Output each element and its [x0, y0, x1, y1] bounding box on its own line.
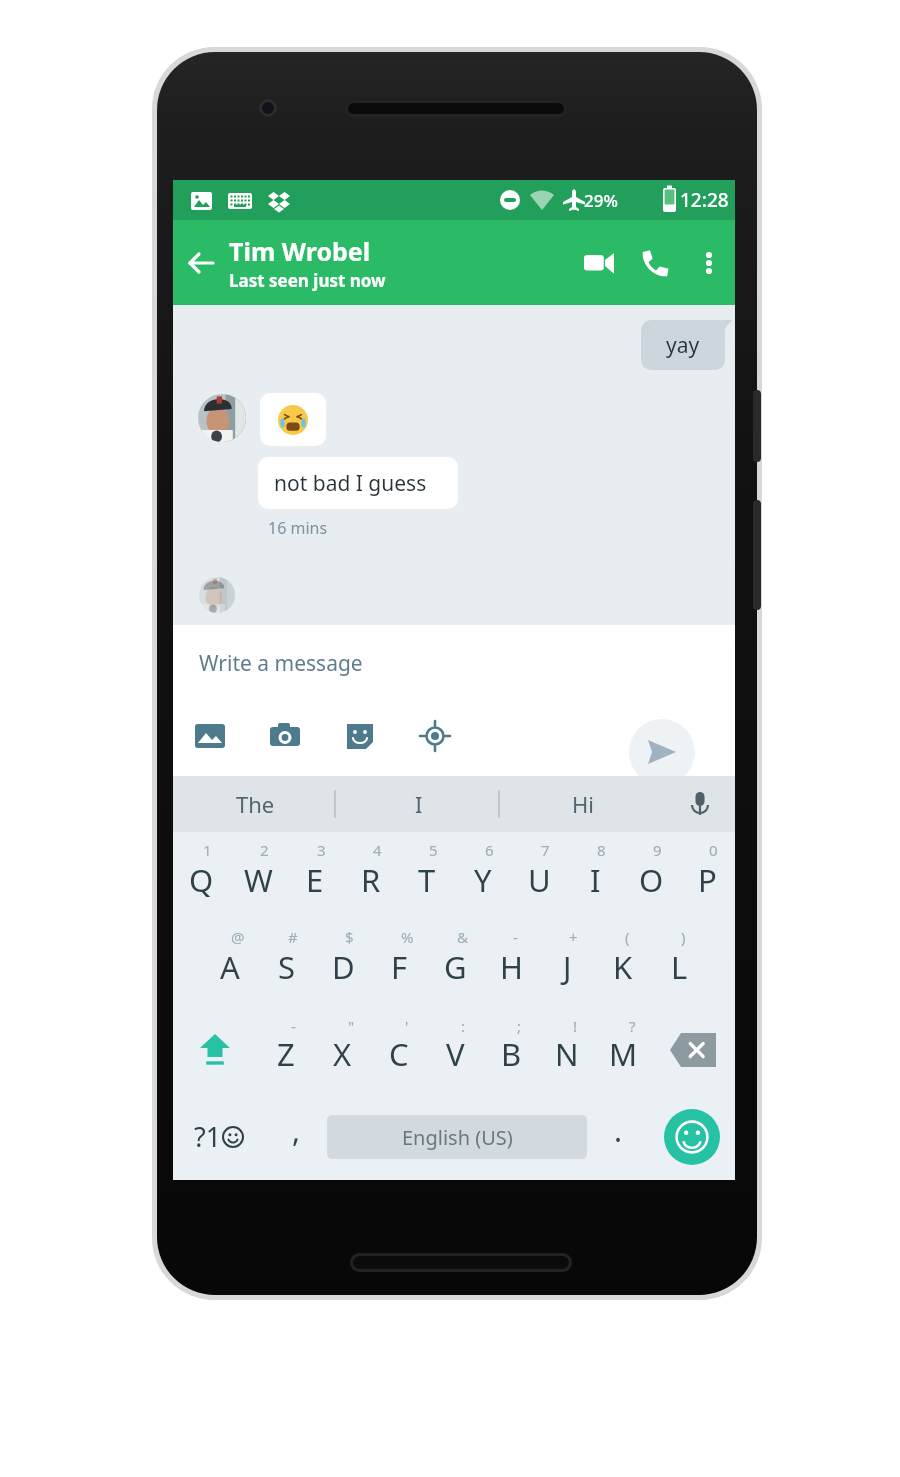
staticText: The — [236, 789, 275, 819]
button[interactable]: @ — [201, 919, 258, 1006]
button[interactable]: English (US) — [327, 1115, 587, 1159]
staticText: 3 — [317, 840, 326, 860]
button[interactable]: ' — [371, 1006, 427, 1093]
button[interactable]: - — [257, 1006, 314, 1093]
staticText: 4 — [373, 840, 382, 860]
staticText: " — [348, 1016, 355, 1036]
staticText: M — [609, 1033, 638, 1075]
button[interactable]: ) — [651, 919, 707, 1006]
staticText: X — [333, 1033, 352, 1075]
staticText: : — [461, 1016, 466, 1036]
staticText: Z — [277, 1033, 295, 1075]
staticText: E — [306, 859, 324, 901]
staticText: 1 — [203, 840, 212, 860]
staticText: T — [418, 859, 436, 901]
staticText: C — [389, 1033, 409, 1075]
button[interactable]: 0 — [679, 832, 735, 919]
button[interactable]: Backspace — [651, 1006, 735, 1093]
staticText: N — [555, 1033, 579, 1075]
staticText: G — [444, 946, 467, 988]
button[interactable]: ?1 — [173, 1093, 265, 1180]
staticText: L — [671, 946, 688, 988]
button[interactable]: Send — [629, 719, 695, 785]
button[interactable]: 1 — [173, 832, 230, 919]
staticText: 16 mins — [268, 517, 328, 539]
button[interactable]: Hi — [501, 776, 665, 832]
button[interactable]: 5 — [399, 832, 455, 919]
staticText: . — [614, 1110, 623, 1151]
button[interactable]: Call — [627, 235, 683, 291]
button[interactable]: ; — [483, 1006, 539, 1093]
staticText: ? — [629, 1016, 636, 1036]
staticText: 29% — [584, 189, 618, 212]
button[interactable]: More options — [683, 237, 735, 289]
button[interactable]: Camera — [260, 711, 310, 761]
staticText: # — [288, 927, 298, 947]
staticText: ; — [517, 1016, 522, 1036]
staticText: & — [457, 927, 468, 947]
staticText: English (US) — [402, 1124, 513, 1151]
button[interactable]: not bad I guess — [258, 457, 458, 509]
button[interactable]: ? — [595, 1006, 651, 1093]
button[interactable]: 8 — [567, 832, 623, 919]
staticText: 0 — [709, 840, 718, 860]
staticText: 12:28 — [680, 187, 729, 213]
button[interactable]: I — [337, 776, 501, 832]
staticText: S — [278, 946, 296, 988]
staticText: 2 — [260, 840, 269, 860]
button[interactable]: % — [371, 919, 427, 1006]
staticText: B — [501, 1033, 522, 1075]
button[interactable]: + — [539, 919, 595, 1006]
button[interactable]: Gallery — [185, 711, 235, 761]
button[interactable]: yay — [641, 320, 725, 370]
staticText: K — [613, 946, 633, 988]
button[interactable]: 3 — [287, 832, 343, 919]
button[interactable]: - — [483, 919, 539, 1006]
button[interactable]: : — [427, 1006, 483, 1093]
button[interactable]: " — [314, 1006, 371, 1093]
staticText: A — [220, 946, 240, 988]
button[interactable]: 4 — [343, 832, 399, 919]
staticText: 8 — [597, 840, 606, 860]
button[interactable] — [260, 393, 326, 446]
button[interactable]: Back — [173, 235, 229, 291]
staticText: Y — [474, 859, 492, 901]
staticText: - — [291, 1016, 296, 1036]
staticText: 7 — [541, 840, 550, 860]
button[interactable]: Shift — [173, 1006, 257, 1093]
button[interactable]: $ — [315, 919, 371, 1006]
staticText: V — [446, 1033, 465, 1075]
staticText: ' — [405, 1016, 409, 1036]
staticText: H — [500, 946, 523, 988]
button[interactable]: Video call — [571, 235, 627, 291]
staticText: I — [415, 789, 423, 819]
button[interactable]: 9 — [623, 832, 679, 919]
button[interactable]: ! — [539, 1006, 595, 1093]
button[interactable]: Tim Wrobel — [229, 234, 571, 292]
staticText: - — [513, 927, 518, 947]
staticText: D — [332, 946, 355, 988]
button[interactable]: Voice input — [665, 776, 735, 832]
button[interactable]: Emoji — [649, 1093, 735, 1180]
staticText: @ — [231, 927, 245, 947]
button[interactable]: Sticker — [335, 711, 385, 761]
staticText: Last seen just now — [229, 269, 386, 292]
button[interactable]: The — [173, 776, 337, 832]
staticText: 5 — [429, 840, 438, 860]
button[interactable]: 7 — [511, 832, 567, 919]
staticText: ( — [625, 927, 630, 947]
staticText: yay — [666, 331, 700, 360]
button[interactable]: ( — [595, 919, 651, 1006]
button[interactable]: & — [427, 919, 483, 1006]
button[interactable]: Write a message — [199, 649, 363, 678]
staticText: % — [401, 927, 414, 947]
button[interactable]: , — [265, 1093, 327, 1180]
staticText: W — [244, 859, 273, 901]
staticText: P — [698, 859, 717, 901]
button[interactable]: 6 — [455, 832, 511, 919]
staticText: J — [563, 946, 572, 988]
button[interactable]: Location — [410, 711, 460, 761]
button[interactable]: . — [587, 1093, 649, 1180]
button[interactable]: 2 — [230, 832, 287, 919]
button[interactable]: # — [258, 919, 315, 1006]
